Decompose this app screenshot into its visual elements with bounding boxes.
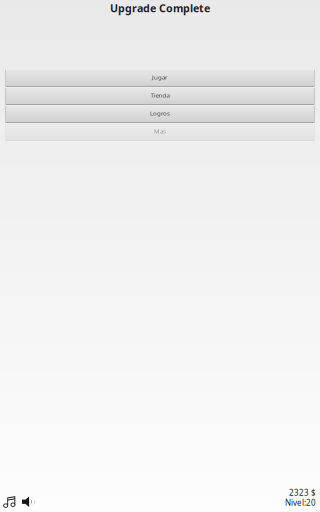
staticText: Nivel:20 (285, 497, 316, 508)
staticText: Tienda (150, 91, 169, 99)
staticText: Upgrade Complete (110, 1, 210, 15)
button[interactable]: Tienda (5, 87, 315, 105)
staticText: Jugar (152, 73, 168, 81)
button[interactable]: Logros (5, 105, 315, 123)
button[interactable]: Mas (5, 123, 315, 141)
staticText: 2323 $ (289, 487, 316, 498)
button[interactable]: Music (3, 496, 22, 508)
staticText: Logros (150, 109, 170, 117)
staticText: Mas (154, 127, 166, 135)
button[interactable]: Sound (22, 496, 34, 508)
button[interactable]: Jugar (5, 69, 315, 87)
